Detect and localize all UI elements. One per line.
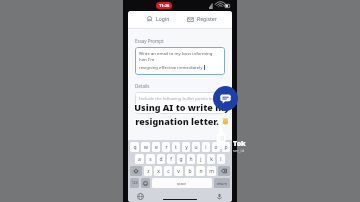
staticText: Using AI to write my xyxy=(133,102,229,114)
button[interactable]: n xyxy=(196,166,205,176)
staticText: h xyxy=(189,156,193,163)
staticText: Using AI to write my xyxy=(135,100,231,112)
staticText: p xyxy=(224,144,228,151)
button[interactable]: Voice input xyxy=(216,193,223,200)
staticText: w xyxy=(144,144,148,151)
button[interactable]: w xyxy=(141,142,150,152)
staticText: j xyxy=(200,156,202,163)
button[interactable]: Chat xyxy=(213,86,238,111)
button[interactable]: z xyxy=(144,166,152,176)
staticText: s xyxy=(149,156,152,163)
staticText: resignation letter. xyxy=(136,114,220,126)
button[interactable]: x xyxy=(154,166,162,176)
staticText: Using AI to write my xyxy=(134,102,230,114)
button[interactable]: Key xyxy=(218,166,230,176)
staticText: o xyxy=(214,144,218,151)
button[interactable]: a xyxy=(135,154,144,164)
button[interactable]: Include the following bullet points in t… xyxy=(135,92,225,114)
staticText: resignation letter. xyxy=(134,116,218,128)
staticText: essay xyxy=(139,103,151,109)
button[interactable]: Login xyxy=(136,11,180,28)
button[interactable]: r xyxy=(162,142,170,152)
staticText: Details xyxy=(135,83,150,89)
staticText: x xyxy=(157,168,160,175)
staticText: d xyxy=(159,156,163,163)
button[interactable]: 123 xyxy=(130,178,139,188)
button[interactable]: t xyxy=(172,142,180,152)
staticText: return xyxy=(217,181,227,185)
button[interactable]: Change keyboard xyxy=(137,193,144,200)
button[interactable]: v xyxy=(174,166,183,176)
button[interactable]: i xyxy=(202,142,210,152)
staticText: ser_id xyxy=(233,148,245,153)
staticText: resigning effective immediately xyxy=(139,64,203,70)
staticText: resignation letter. xyxy=(134,115,218,127)
button[interactable]: l xyxy=(217,154,225,164)
button[interactable]: o xyxy=(212,142,220,152)
staticText: Tok xyxy=(233,139,246,149)
button[interactable]: return xyxy=(214,178,230,188)
button[interactable]: e xyxy=(152,142,160,152)
button[interactable]: k xyxy=(207,154,215,164)
staticText: r xyxy=(165,144,168,151)
button[interactable]: m xyxy=(207,166,216,176)
staticText: l xyxy=(220,156,222,163)
staticText: t xyxy=(175,144,177,151)
staticText: i xyxy=(205,144,207,151)
button[interactable]: j xyxy=(197,154,205,164)
button[interactable]: Key xyxy=(130,166,142,176)
staticText: m xyxy=(209,168,214,175)
staticText: e xyxy=(155,144,158,151)
staticText: space xyxy=(177,181,187,186)
staticText: z xyxy=(147,168,150,175)
staticText: resignation letter. xyxy=(135,116,219,128)
staticText: Login xyxy=(156,16,170,23)
button[interactable]: p xyxy=(222,142,230,152)
staticText: Essay Prompt xyxy=(135,38,164,44)
button[interactable]: space xyxy=(152,178,212,188)
staticText: y xyxy=(185,144,188,151)
staticText: a xyxy=(138,156,141,163)
button[interactable]: u xyxy=(192,142,200,152)
staticText: Using AI to write my xyxy=(133,100,229,112)
staticText: resignation letter. xyxy=(136,116,220,128)
staticText: Register xyxy=(197,16,217,23)
staticText: b xyxy=(188,168,192,175)
button[interactable]: d xyxy=(157,154,165,164)
staticText: resignation letter. xyxy=(134,114,218,126)
button[interactable]: Emoji xyxy=(141,178,150,188)
staticText: 123 xyxy=(132,181,138,185)
button[interactable]: c xyxy=(164,166,172,176)
staticText: Using AI to write my xyxy=(135,102,231,114)
staticText: f xyxy=(170,156,172,163)
button[interactable]: q xyxy=(130,142,139,152)
staticText: Using AI to write my xyxy=(133,101,229,113)
staticText: Write an email to my boss informing him … xyxy=(139,50,221,62)
staticText: Using AI to write my xyxy=(135,101,231,113)
button[interactable]: b xyxy=(185,166,194,176)
button[interactable]: Register xyxy=(180,11,224,28)
button[interactable]: s xyxy=(146,154,155,164)
staticText: Using AI to write my xyxy=(134,100,230,112)
staticText: k xyxy=(210,156,213,163)
staticText: Include the following bullet points in t… xyxy=(139,95,221,101)
button[interactable]: h xyxy=(187,154,195,164)
button[interactable]: f xyxy=(167,154,175,164)
staticText: q xyxy=(133,144,137,151)
staticText: resignation letter. xyxy=(135,114,219,126)
staticText: g xyxy=(179,156,183,163)
staticText: u xyxy=(194,144,198,151)
button[interactable]: y xyxy=(182,142,190,152)
staticText: Using AI to write my xyxy=(134,101,230,113)
staticText: 11:26 xyxy=(159,3,170,8)
staticText: v xyxy=(177,168,180,175)
staticText: resignation letter. xyxy=(135,115,219,127)
staticText: c xyxy=(167,168,170,175)
staticText: n xyxy=(199,168,203,175)
button[interactable]: g xyxy=(177,154,185,164)
staticText: resignation letter. xyxy=(136,115,220,127)
button[interactable]: Write an email to my boss informing him … xyxy=(135,47,225,75)
